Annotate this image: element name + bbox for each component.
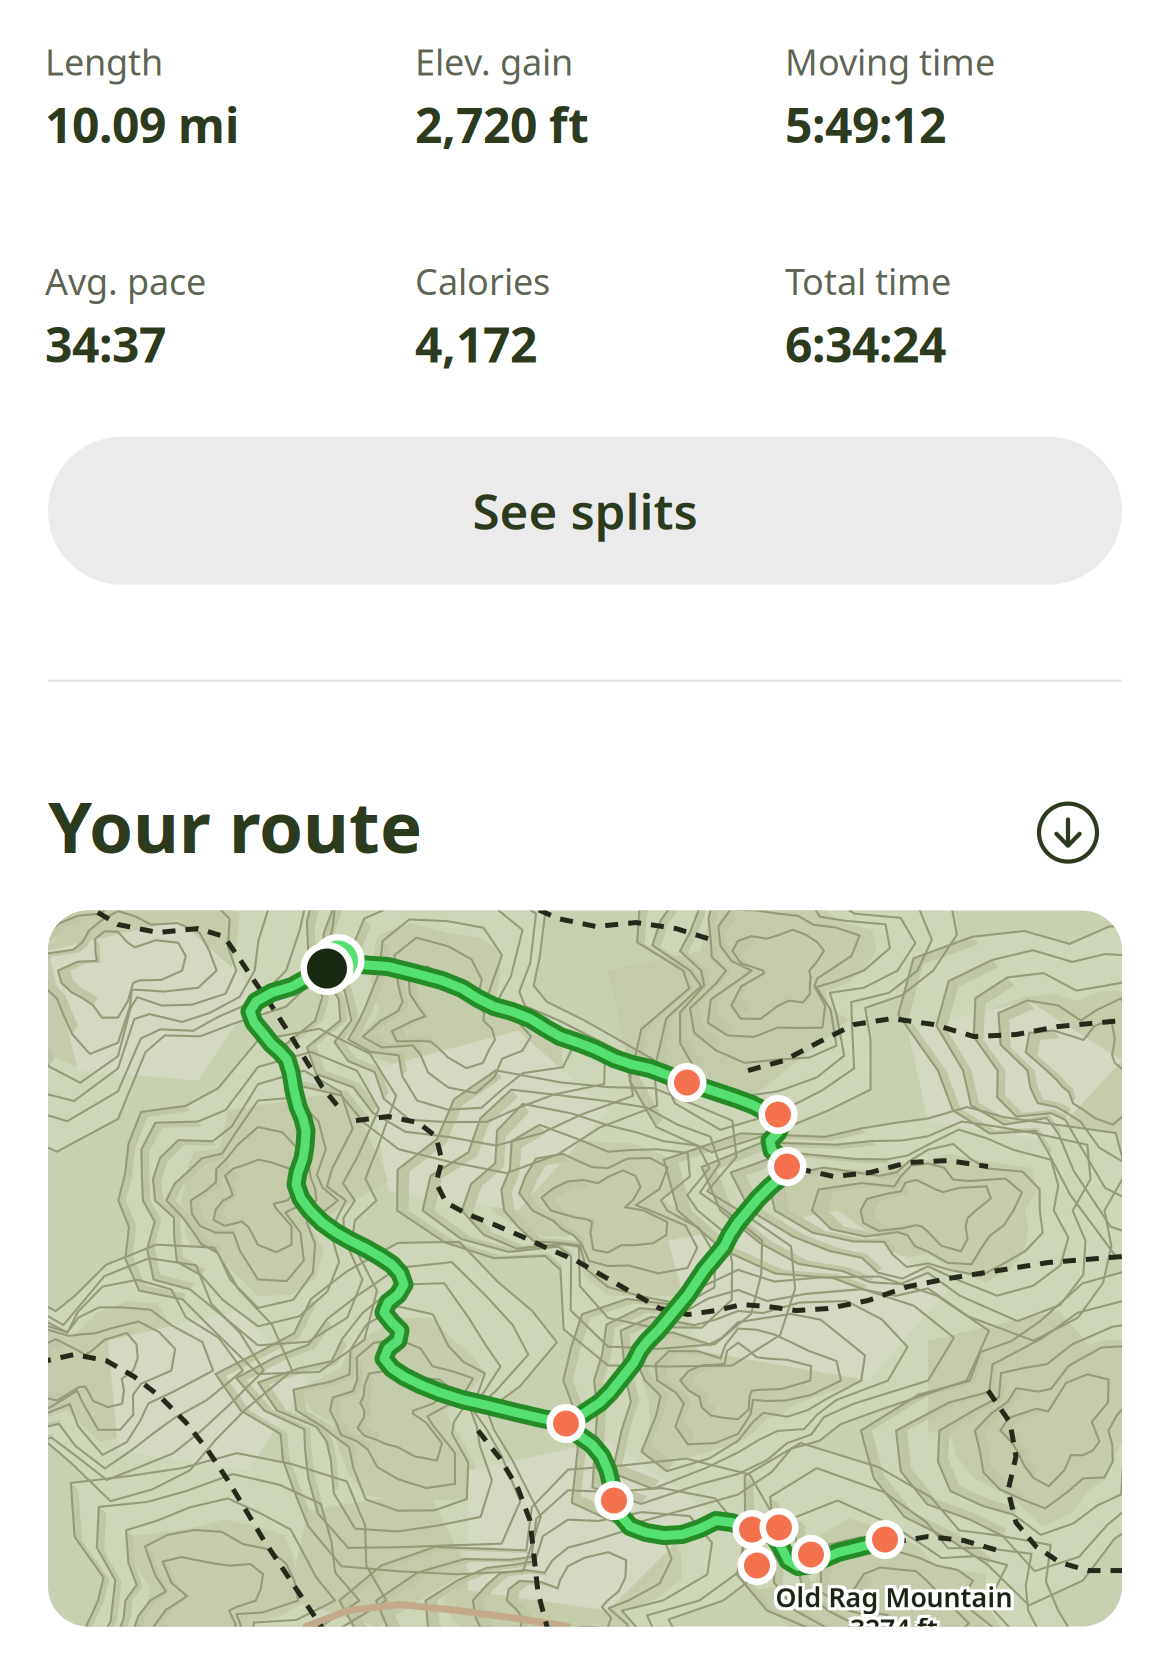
staticText: Old Rag Mountain (778, 1576, 1015, 1611)
staticText: Old Rag Mountain (772, 1576, 1009, 1611)
button[interactable]: See splits (48, 437, 1122, 585)
staticText: 10.09 mi (45, 92, 239, 156)
staticText: Old Rag Mountain (778, 1579, 1015, 1614)
staticText: 3274 ft (850, 1607, 938, 1643)
button[interactable]: Download route (1039, 790, 1122, 862)
staticText: 34:37 (45, 312, 166, 376)
staticText: Old Rag Mountain (775, 1576, 1012, 1611)
staticText: Old Rag Mountain (772, 1579, 1009, 1614)
button[interactable]: Open route map (48, 910, 1122, 1626)
staticText: 3274 ft (847, 1613, 935, 1649)
staticText: 3274 ft (850, 1613, 938, 1649)
staticText: 3274 ft (853, 1607, 941, 1643)
staticText: Moving time (785, 38, 995, 85)
staticText: 3274 ft (847, 1607, 935, 1643)
staticText: 3274 ft (853, 1610, 941, 1646)
staticText: Old Rag Mountain (775, 1582, 1012, 1617)
staticText: 3274 ft (847, 1610, 935, 1646)
staticText: 2,720 ft (415, 92, 589, 156)
staticText: Avg. pace (45, 257, 206, 305)
staticText: Old Rag Mountain (775, 1579, 1012, 1614)
staticText: 3274 ft (850, 1610, 938, 1646)
staticText: 3274 ft (853, 1613, 941, 1649)
staticText: See splits (472, 478, 697, 543)
staticText: Length (45, 38, 163, 85)
staticText: 4,172 (415, 312, 537, 376)
staticText: 5:49:12 (785, 92, 946, 156)
staticText: Elev. gain (415, 38, 573, 85)
staticText: Old Rag Mountain (778, 1582, 1015, 1617)
staticText: 6:34:24 (785, 312, 946, 376)
staticText: Calories (415, 257, 550, 305)
staticText: Old Rag Mountain (772, 1582, 1009, 1617)
staticText: Your route (48, 779, 422, 872)
staticText: Total time (785, 257, 951, 305)
